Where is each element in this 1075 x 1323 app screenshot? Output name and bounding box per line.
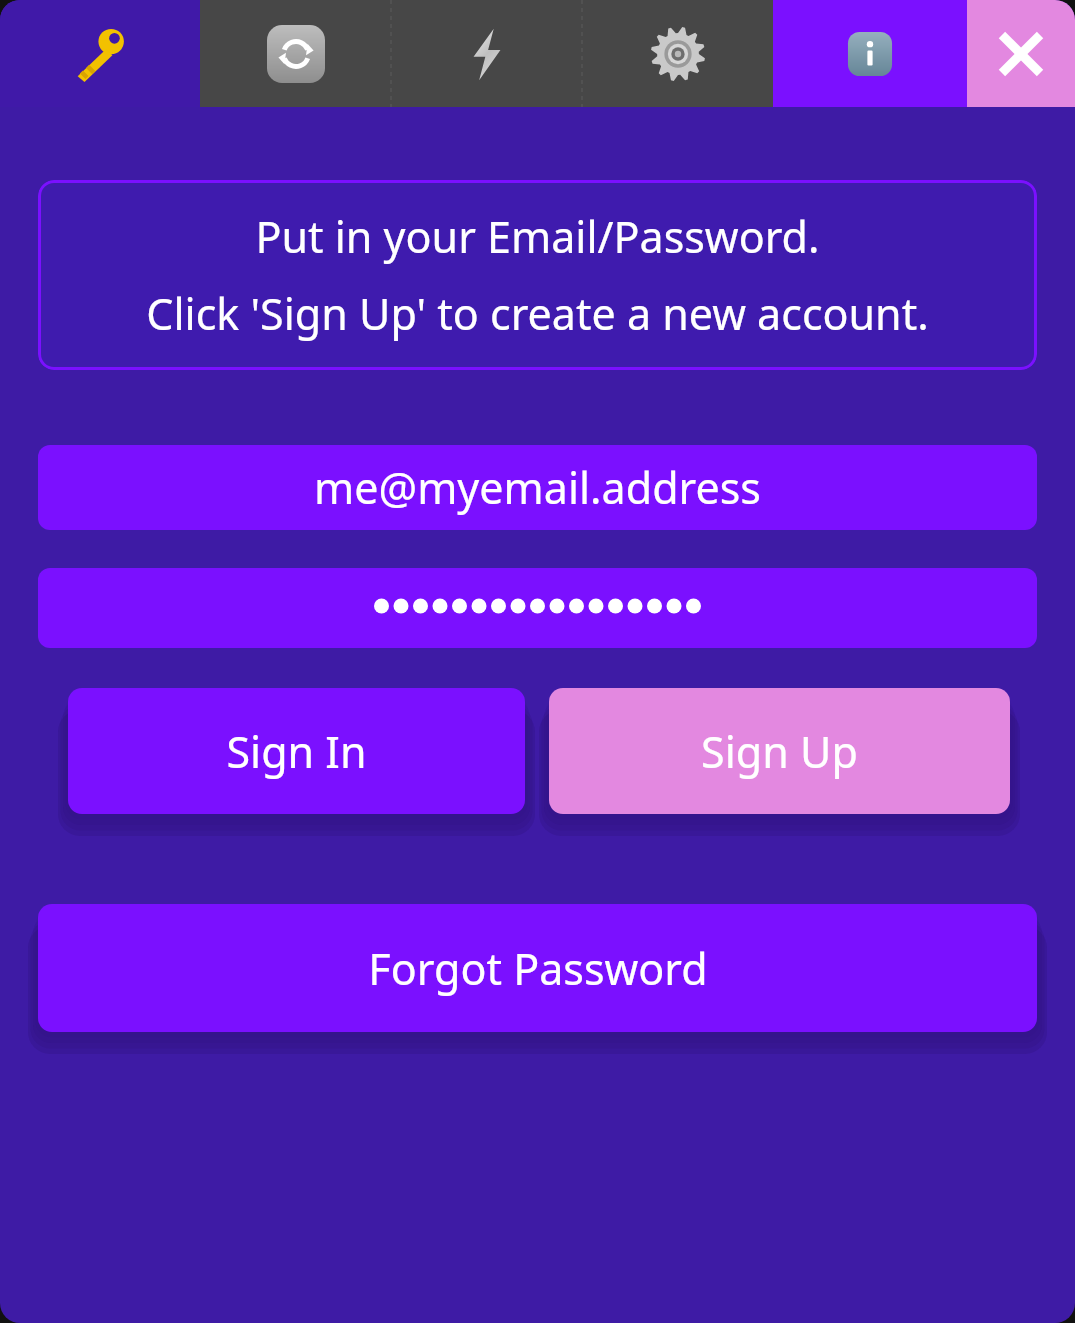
staticText: Forgot Password [368, 939, 708, 998]
button[interactable] [38, 568, 1037, 648]
button[interactable]: Quick actions [391, 0, 582, 107]
button[interactable]: Close [967, 0, 1075, 107]
button[interactable]: Sync [200, 0, 391, 107]
staticText: me@myemail.address [314, 458, 761, 517]
staticText: Put in your Email/Password. [255, 207, 820, 266]
button[interactable]: Information [773, 0, 967, 107]
button[interactable]: Put in your Email/Password. [38, 180, 1037, 370]
button[interactable]: Forgot Password [38, 904, 1037, 1032]
staticText: Sign Up [701, 722, 858, 781]
button[interactable]: Sign In [68, 688, 525, 814]
button[interactable]: Settings [582, 0, 773, 107]
staticText: Click 'Sign Up' to create a new account. [146, 284, 929, 343]
button[interactable]: Passwords [0, 0, 200, 107]
staticText: Sign In [226, 722, 367, 781]
button[interactable]: Sign Up [549, 688, 1010, 814]
button[interactable]: me@myemail.address [38, 445, 1037, 530]
